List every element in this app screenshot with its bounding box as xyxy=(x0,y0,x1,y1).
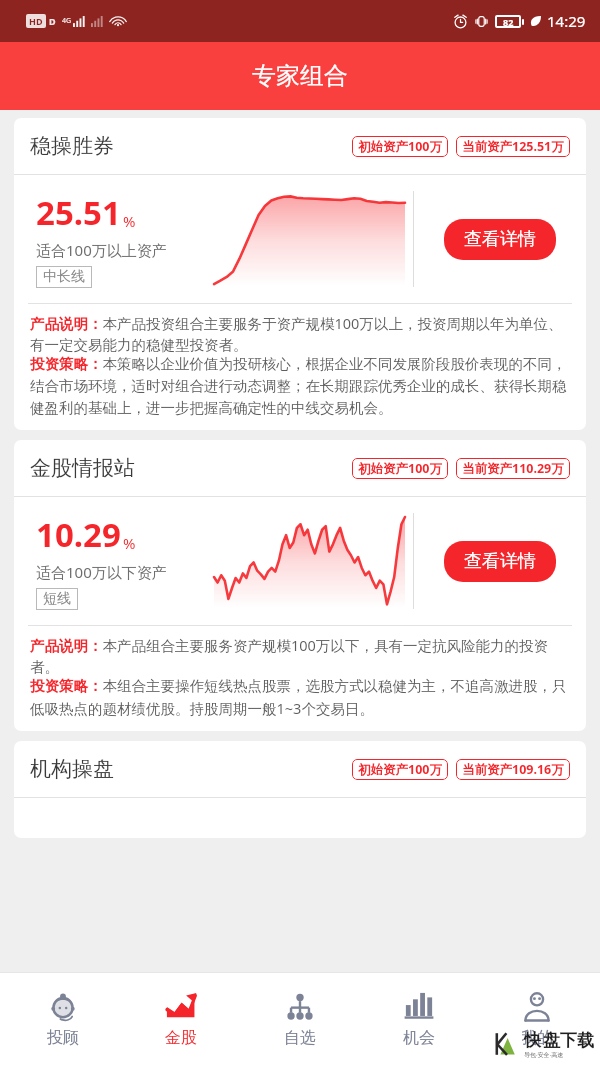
button[interactable]: 查看详情 xyxy=(444,541,556,582)
staticText: 投资策略：本组合主要操作短线热点股票，选股方式以稳健为主，不追高激进股，只低吸热… xyxy=(30,677,572,719)
button[interactable]: 金股情报站 xyxy=(14,440,586,731)
staticText: 自选 xyxy=(284,1028,316,1048)
staticText: 初始资产100万 xyxy=(358,761,442,778)
staticText: 适合100万以下资产 xyxy=(36,562,167,582)
staticText: 稳操胜券 xyxy=(30,133,114,159)
staticText: HD xyxy=(29,15,43,27)
staticText: 投顾 xyxy=(47,1028,79,1048)
staticText: 当前资产109.16万 xyxy=(462,761,564,778)
staticText: 查看详情 xyxy=(464,550,536,573)
staticText: 金股情报站 xyxy=(30,455,135,481)
staticText: 82 xyxy=(503,16,514,28)
staticText: 10.29 xyxy=(36,512,121,557)
staticText: 机构操盘 xyxy=(30,756,114,782)
staticText: 14:29 xyxy=(547,11,586,31)
staticText: 25.51 xyxy=(36,190,121,235)
staticText: 产品说明：本产品投资组合主要服务于资产规模100万以上，投资周期以年为单位、有一… xyxy=(30,313,572,355)
staticText: % xyxy=(123,533,136,553)
button[interactable]: 机构操盘 xyxy=(14,741,586,838)
staticText: D xyxy=(49,15,56,27)
staticText: 当前资产125.51万 xyxy=(462,138,564,155)
staticText: 4G xyxy=(62,16,72,26)
staticText: 盘下载 xyxy=(543,1030,594,1051)
button[interactable]: 投顾 xyxy=(7,985,119,1054)
button[interactable]: 稳操胜券 xyxy=(14,118,586,430)
button[interactable]: 机会 xyxy=(363,985,475,1054)
staticText: 快 xyxy=(524,1030,541,1051)
button[interactable]: 自选 xyxy=(244,985,356,1054)
staticText: 初始资产100万 xyxy=(358,460,442,477)
staticText: 查看详情 xyxy=(464,228,536,251)
button[interactable]: 查看详情 xyxy=(444,219,556,260)
staticText: 导包·安全·高速 xyxy=(524,1051,564,1059)
staticText: 短线 xyxy=(43,590,71,608)
staticText: 初始资产100万 xyxy=(358,138,442,155)
button[interactable]: 我的 xyxy=(481,985,593,1054)
staticText: 专家组合 xyxy=(252,61,348,91)
staticText: 机会 xyxy=(403,1028,435,1048)
staticText: 中长线 xyxy=(43,268,85,286)
staticText: 我的 xyxy=(521,1028,553,1048)
staticText: % xyxy=(123,211,136,231)
button[interactable]: 金股 xyxy=(125,985,237,1054)
staticText: 金股 xyxy=(165,1028,197,1048)
staticText: 产品说明：本产品组合主要服务资产规模100万以下，具有一定抗风险能力的投资者。 xyxy=(30,635,572,677)
staticText: 当前资产110.29万 xyxy=(462,460,564,477)
staticText: 适合100万以上资产 xyxy=(36,240,167,260)
staticText: 投资策略：本策略以企业价值为投研核心，根据企业不同发展阶段股价表现的不同，结合市… xyxy=(30,355,572,418)
